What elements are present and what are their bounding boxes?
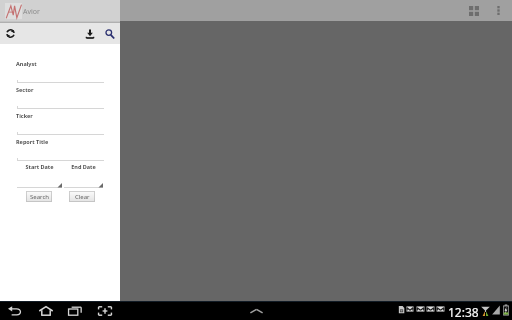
button[interactable]: Start Date	[17, 163, 62, 171]
staticText: Clear	[75, 193, 90, 201]
button[interactable]: Search	[102, 23, 118, 44]
button[interactable]: Sector	[17, 98, 104, 109]
button[interactable]: Pick date	[17, 181, 62, 189]
staticText: Sector	[16, 86, 34, 93]
staticText: Report Title	[16, 138, 49, 145]
staticText: Search	[30, 193, 49, 201]
button[interactable]: Ticker	[17, 124, 104, 135]
button[interactable]: Search	[26, 191, 52, 202]
staticText: Ticker	[16, 112, 33, 119]
staticText: End Date	[64, 163, 103, 170]
staticText: Analyst	[16, 60, 37, 67]
button[interactable]: Recent apps	[66, 301, 84, 320]
button[interactable]: Expand status bar	[247, 301, 265, 320]
button[interactable]: Analyst	[17, 72, 104, 83]
button[interactable]: Pick date	[64, 181, 103, 189]
button[interactable]: Back	[6, 301, 24, 320]
button[interactable]: Avior home	[5, 3, 22, 19]
button[interactable]: Clear	[69, 191, 95, 202]
button[interactable]: Home	[37, 301, 55, 320]
staticText: Start Date	[17, 163, 62, 170]
button[interactable]: More options	[489, 0, 508, 21]
button[interactable]: Refresh	[2, 23, 18, 44]
button[interactable]: Report Title	[17, 150, 104, 161]
button[interactable]: Screenshot	[96, 301, 114, 320]
button[interactable]: Download	[82, 23, 98, 44]
staticText: Avior	[23, 7, 40, 17]
staticText: 12:38	[448, 304, 479, 320]
button[interactable]: Grid view	[464, 0, 483, 21]
button[interactable]: End Date	[64, 163, 103, 171]
